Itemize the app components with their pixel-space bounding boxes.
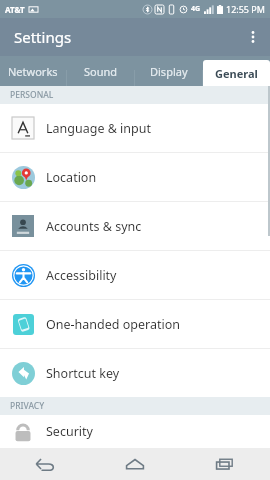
staticText: Settings — [14, 27, 72, 47]
button[interactable]: Shortcut key — [0, 349, 270, 397]
staticText: Networks — [8, 64, 58, 79]
button[interactable]: Security — [0, 415, 270, 448]
button[interactable]: Home — [90, 448, 180, 480]
staticText: PRIVACY — [10, 400, 45, 412]
staticText: Accounts & sync — [46, 218, 142, 235]
staticText: General — [215, 66, 258, 81]
staticText: PERSONAL — [10, 89, 54, 101]
button[interactable]: General — [203, 60, 270, 86]
staticText: Display — [150, 64, 188, 79]
staticText: 4G — [191, 4, 201, 14]
staticText: 12:55 PM — [226, 3, 265, 15]
button[interactable]: Language & input — [0, 104, 270, 152]
button[interactable]: Accounts & sync — [0, 202, 270, 250]
button[interactable]: Networks — [0, 56, 66, 86]
staticText: AT&T — [5, 4, 25, 15]
button[interactable]: One-handed operation — [0, 300, 270, 348]
button[interactable]: Recent apps — [180, 448, 270, 480]
staticText: Shortcut key — [46, 365, 120, 382]
button[interactable]: Location — [0, 153, 270, 201]
staticText: Accessibility — [46, 267, 117, 284]
button[interactable]: Accessibility — [0, 251, 270, 299]
staticText: One-handed operation — [46, 316, 180, 333]
staticText: Sound — [84, 64, 118, 79]
button[interactable]: Sound — [67, 56, 134, 86]
button[interactable]: More options — [236, 20, 270, 54]
staticText: Language & input — [46, 120, 151, 137]
button[interactable]: Display — [135, 56, 202, 86]
button[interactable]: Back — [0, 448, 90, 480]
staticText: Location — [46, 169, 97, 186]
staticText: Security — [46, 423, 93, 440]
